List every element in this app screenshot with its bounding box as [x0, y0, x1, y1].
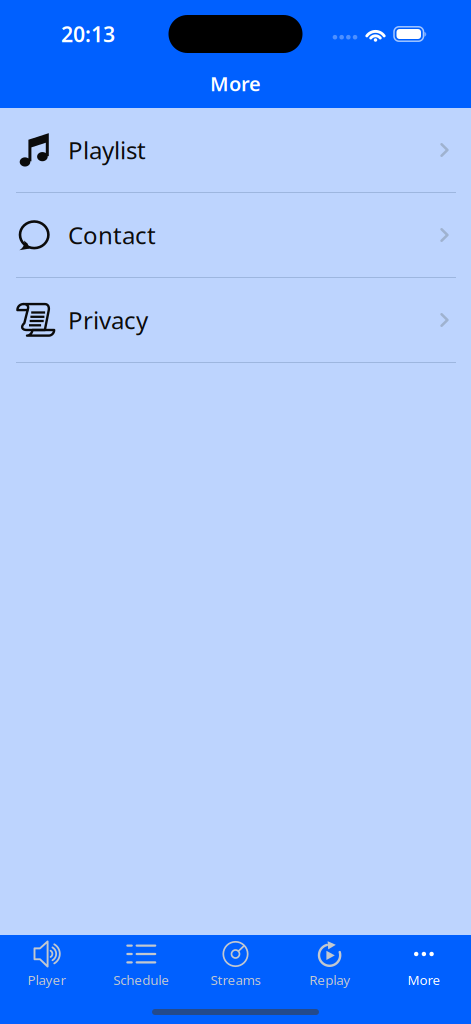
staticText: Schedule	[113, 971, 169, 989]
staticText: Contact	[68, 219, 156, 251]
button[interactable]: Replay	[283, 935, 377, 989]
button[interactable]: More	[377, 935, 471, 989]
staticText: More	[210, 70, 261, 97]
staticText: Playlist	[68, 134, 146, 166]
staticText: More	[407, 971, 440, 989]
staticText: Player	[28, 971, 67, 989]
button[interactable]: Schedule	[94, 935, 188, 989]
button[interactable]: Playlist	[0, 108, 471, 193]
button[interactable]: Privacy	[0, 278, 471, 363]
staticText: Streams	[210, 971, 260, 989]
button[interactable]: Streams	[188, 935, 283, 989]
button[interactable]: Contact	[0, 193, 471, 278]
staticText: 20:13	[61, 20, 115, 48]
staticText: Replay	[309, 971, 350, 989]
staticText: Privacy	[68, 304, 148, 336]
button[interactable]: Player	[0, 935, 94, 989]
